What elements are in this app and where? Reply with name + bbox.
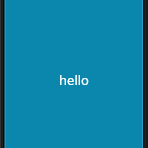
staticText: hello [59,71,89,89]
